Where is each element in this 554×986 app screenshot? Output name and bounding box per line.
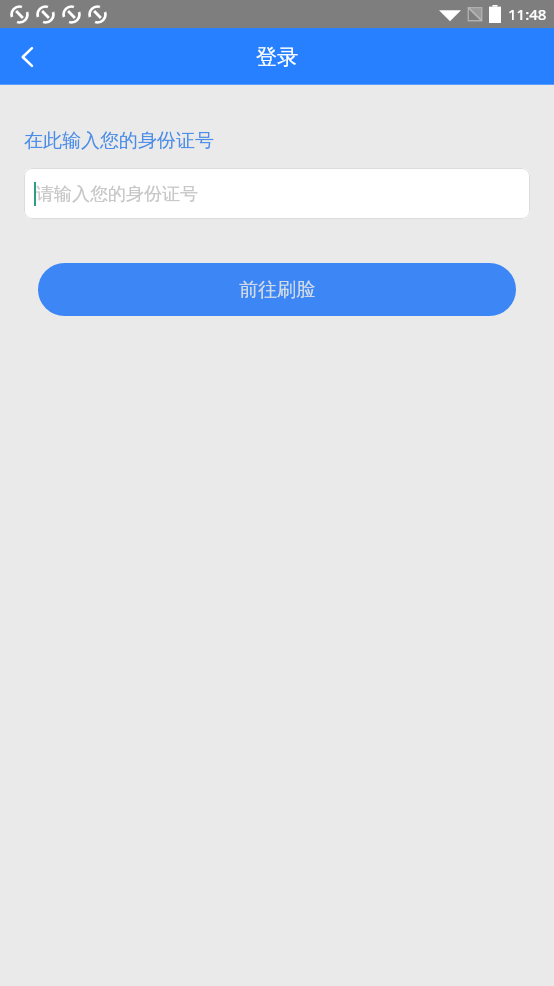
staticText: 登录 <box>256 44 298 70</box>
staticText: 在此输入您的身份证号 <box>24 129 214 153</box>
button[interactable]: 返回 <box>0 29 56 85</box>
button[interactable]: 请输入您的身份证号 <box>24 168 530 219</box>
staticText: 前往刷脸 <box>239 278 315 302</box>
staticText: 11:48 <box>508 4 547 24</box>
button[interactable]: 前往刷脸 <box>38 263 516 316</box>
staticText: 请输入您的身份证号 <box>36 183 198 206</box>
